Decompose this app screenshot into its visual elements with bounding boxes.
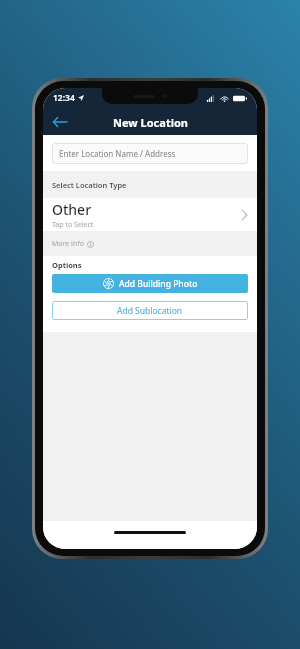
button[interactable]: More info xyxy=(52,239,94,249)
button[interactable]: Back xyxy=(47,109,73,135)
staticText: Options xyxy=(52,260,82,270)
staticText: Add Building Photo xyxy=(119,278,198,290)
staticText: New Location xyxy=(113,115,188,130)
staticText: Other xyxy=(52,200,92,219)
button[interactable]: Add Sublocation xyxy=(52,301,248,320)
staticText: 12:34 xyxy=(53,92,75,104)
staticText: Select Location Type xyxy=(52,180,127,190)
staticText: Add Sublocation xyxy=(117,305,183,317)
button[interactable]: Add Building Photo xyxy=(52,274,248,293)
staticText: More info xyxy=(52,239,84,249)
button[interactable]: Other xyxy=(43,198,257,231)
staticText: Tap to Select xyxy=(52,220,94,230)
staticText: Enter Location Name / Address xyxy=(59,148,176,159)
button[interactable]: Enter Location Name / Address xyxy=(52,143,248,164)
